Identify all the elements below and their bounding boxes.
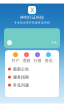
staticText: 最新公告 xyxy=(13,67,29,71)
staticText: 神剑行证科技 xyxy=(20,15,44,20)
button[interactable]: 常见问题 xyxy=(5,81,59,89)
staticText: 详情 xyxy=(51,41,57,44)
button[interactable]: 理财 xyxy=(21,52,32,63)
staticText: 服务指南 xyxy=(13,75,29,79)
staticText: 资讯 xyxy=(44,58,52,63)
staticText: 理财 xyxy=(22,58,30,63)
button[interactable]: 开户 xyxy=(10,52,21,63)
staticText: 常见问题 xyxy=(13,83,29,87)
staticText: 开户 xyxy=(11,58,19,63)
button[interactable]: 服务指南 xyxy=(5,73,59,81)
staticText: X xyxy=(30,6,34,14)
staticText: 行情 xyxy=(33,58,41,63)
button[interactable]: 资讯 xyxy=(43,52,54,63)
button[interactable]: 最新公告 xyxy=(5,65,59,73)
staticText: 专业的证券科技服务提供商 xyxy=(14,21,50,24)
button[interactable]: 行情 xyxy=(32,52,43,63)
